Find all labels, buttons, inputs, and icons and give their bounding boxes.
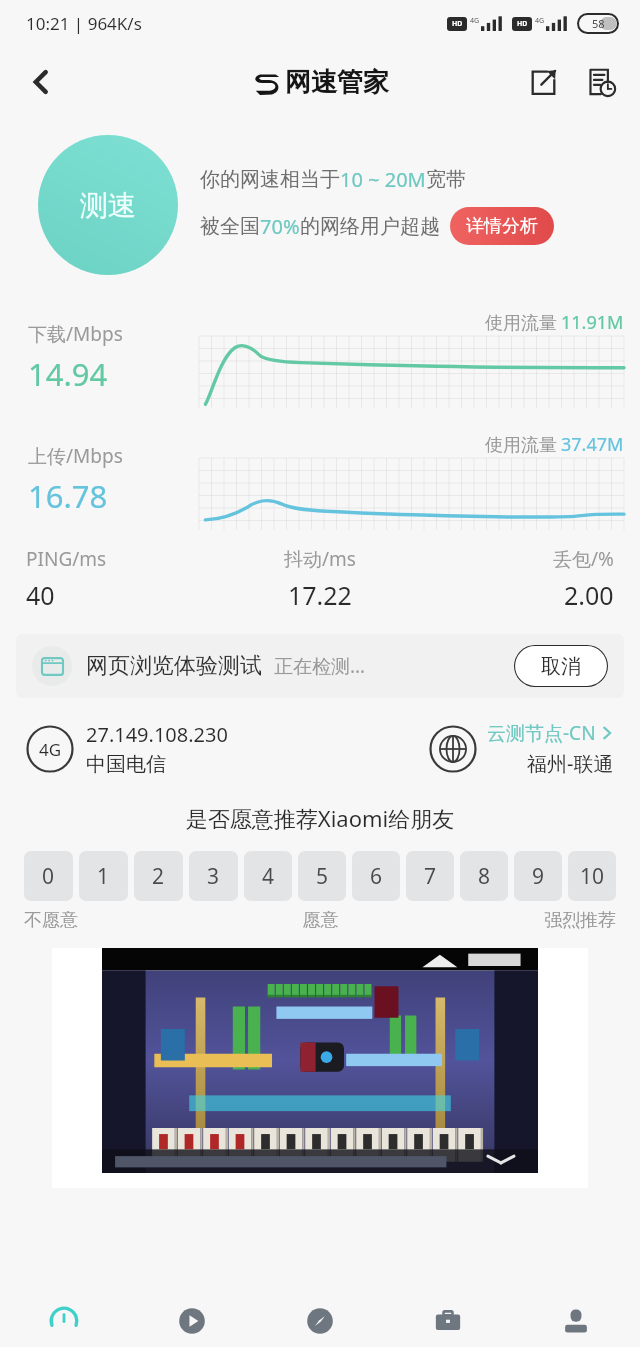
staticText: 17.22 <box>288 578 352 612</box>
staticText: 福州-联通 <box>527 750 614 777</box>
staticText: PING/ms <box>26 546 107 572</box>
staticText: 27.149.108.230 <box>86 721 228 748</box>
staticText: 云测节点-CN <box>487 720 596 746</box>
staticText: 10:21 | 964K/s <box>26 12 142 35</box>
button[interactable]: 0 <box>24 851 73 901</box>
button[interactable]: Back <box>14 55 68 109</box>
staticText: 的网络用户超越 <box>300 214 440 239</box>
staticText: 5 <box>316 862 329 891</box>
staticText: HD <box>517 19 528 29</box>
staticText: 宽带 <box>426 167 466 192</box>
button[interactable]: 8 <box>460 851 508 901</box>
staticText: 愿意 <box>222 909 419 932</box>
staticText: 强烈推荐 <box>419 909 616 932</box>
button[interactable]: Speed test <box>0 1295 128 1347</box>
staticText: 6 <box>370 862 383 891</box>
staticText: 8 <box>478 862 491 891</box>
button[interactable]: Advertisement video <box>102 948 538 1173</box>
button[interactable]: 云测节点-CN <box>429 720 614 777</box>
staticText: 下载/Mbps <box>28 321 123 347</box>
button[interactable]: History <box>576 57 626 107</box>
button[interactable]: 10 <box>568 851 616 901</box>
button[interactable]: 测速 <box>38 135 178 275</box>
staticText: 16.78 <box>28 475 108 517</box>
button[interactable]: 5 <box>298 851 346 901</box>
button[interactable]: 6 <box>352 851 400 901</box>
button[interactable]: 3 <box>189 851 238 901</box>
button[interactable]: Share <box>518 57 568 107</box>
staticText: 4G <box>39 738 62 761</box>
staticText: 中国电信 <box>86 752 166 777</box>
staticText: 上传/Mbps <box>28 443 123 469</box>
staticText: 58 <box>592 16 605 31</box>
button[interactable]: 4 <box>244 851 292 901</box>
staticText: 7 <box>424 862 437 891</box>
button[interactable]: 网页浏览体验测试 <box>16 634 624 698</box>
button[interactable]: 取消 <box>514 645 608 687</box>
staticText: 使用流量 <box>485 432 562 457</box>
staticText: 你的网速相当于 <box>200 167 340 192</box>
staticText: 是否愿意推荐Xiaomi给朋友 <box>0 803 640 833</box>
button[interactable]: 详情分析 <box>450 207 554 245</box>
button[interactable]: 2 <box>134 851 183 901</box>
staticText: 70% <box>260 213 300 240</box>
staticText: 10 <box>580 862 605 891</box>
staticText: 14.94 <box>28 353 108 395</box>
button[interactable]: 7 <box>406 851 454 901</box>
staticText: 10 ~ 20M <box>340 166 426 193</box>
staticText: 取消 <box>541 654 581 679</box>
staticText: 丢包/% <box>553 546 614 572</box>
staticText: 使用流量 <box>485 310 562 335</box>
button[interactable]: Discover <box>256 1295 384 1347</box>
staticText: 3 <box>207 862 220 891</box>
button[interactable]: Toolbox <box>384 1295 512 1347</box>
staticText: 4G <box>535 16 545 26</box>
staticText: 11.91M <box>561 310 624 335</box>
staticText: 4 <box>262 862 275 891</box>
staticText: 被全国 <box>200 214 260 239</box>
staticText: 网页浏览体验测试 <box>86 652 262 680</box>
staticText: 9 <box>532 862 545 891</box>
button[interactable]: 1 <box>79 851 128 901</box>
staticText: HD <box>452 19 463 29</box>
staticText: 0 <box>42 862 55 891</box>
staticText: 网速管家 <box>285 66 389 99</box>
button[interactable]: 4G <box>26 721 429 777</box>
staticText: 详情分析 <box>466 215 538 238</box>
staticText: 抖动/ms <box>284 546 356 572</box>
staticText: 4G <box>470 16 480 26</box>
staticText: 2.00 <box>564 578 614 612</box>
staticText: 正在检测… <box>274 653 366 679</box>
staticText: 40 <box>26 578 55 612</box>
button[interactable]: Videos <box>128 1295 256 1347</box>
button[interactable]: Profile <box>512 1295 640 1347</box>
button[interactable]: 9 <box>514 851 562 901</box>
staticText: 不愿意 <box>24 909 222 932</box>
staticText: 测速 <box>80 188 136 223</box>
staticText: 2 <box>152 862 165 891</box>
staticText: 37.47M <box>561 432 624 457</box>
staticText: 1 <box>97 862 110 891</box>
